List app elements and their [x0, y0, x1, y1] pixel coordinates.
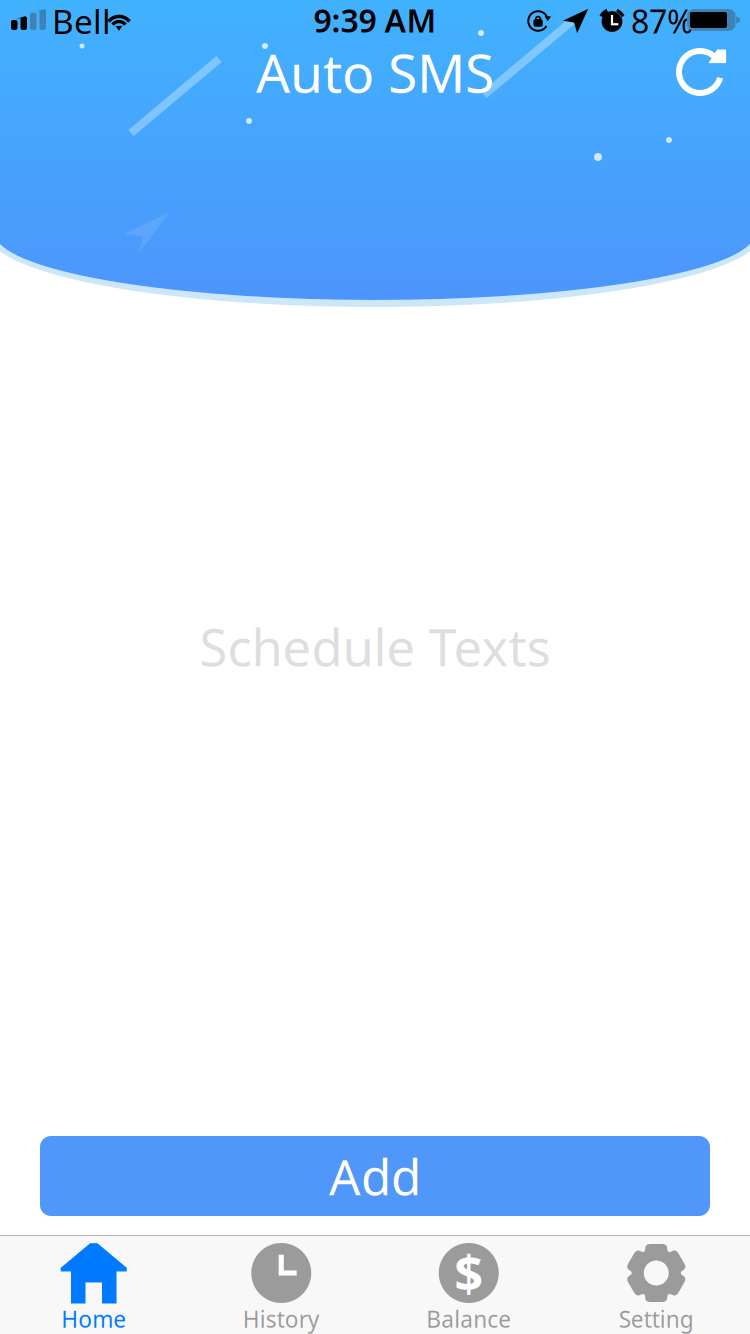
button[interactable]: Refresh — [664, 36, 736, 108]
button[interactable]: Add — [40, 1136, 710, 1216]
button[interactable]: Home — [0, 1235, 187, 1334]
staticText: 9:39 AM — [313, 0, 436, 41]
staticText: History — [243, 1304, 320, 1334]
staticText: Bell — [52, 0, 111, 43]
staticText: Balance — [426, 1304, 511, 1334]
staticText: Schedule Texts — [199, 613, 550, 680]
staticText: Auto SMS — [256, 37, 494, 107]
button[interactable]: History — [187, 1235, 375, 1334]
staticText: Home — [61, 1304, 126, 1334]
staticText: Setting — [619, 1304, 694, 1334]
staticText: 87% — [631, 0, 694, 42]
button[interactable]: Setting — [562, 1235, 750, 1334]
button[interactable]: $ — [375, 1235, 562, 1334]
staticText: Add — [329, 1143, 421, 1209]
staticText: $ — [454, 1238, 483, 1306]
